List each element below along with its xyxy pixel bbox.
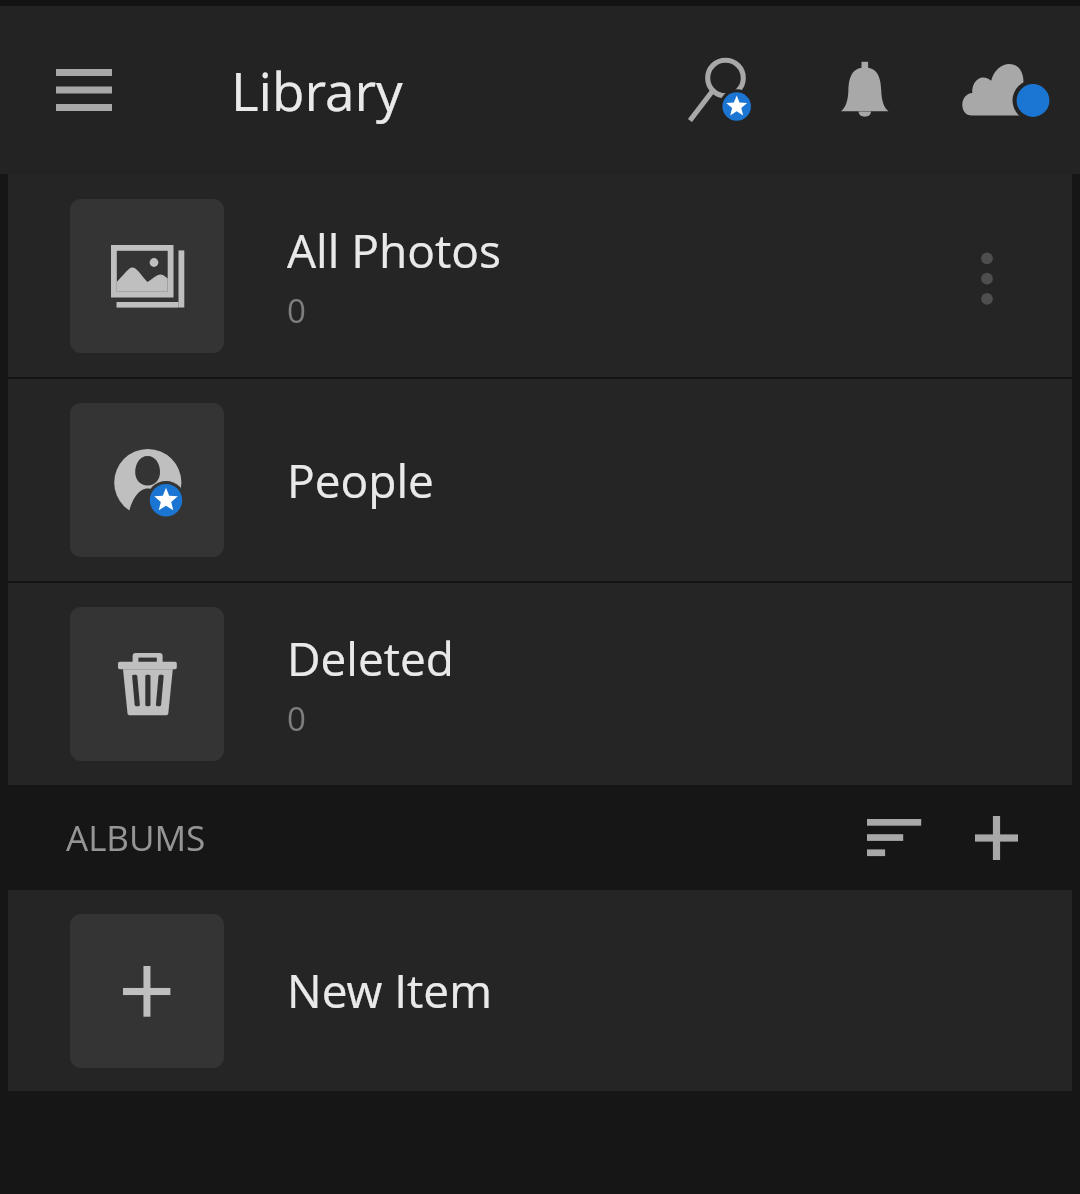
button[interactable]: All Photos [8, 174, 1072, 377]
button[interactable]: New Item [8, 890, 1072, 1091]
staticText: ALBUMS [66, 814, 206, 862]
button[interactable]: Open navigation menu [28, 52, 140, 128]
staticText: New Item [287, 959, 492, 1022]
button[interactable]: Add album [940, 785, 1052, 890]
button[interactable]: People [8, 379, 1072, 581]
staticText: 0 [287, 288, 306, 333]
button[interactable]: Search [688, 56, 754, 122]
staticText: All Photos [287, 219, 502, 282]
staticText: People [287, 449, 434, 512]
button[interactable]: Sort albums [821, 785, 967, 890]
staticText: Library [231, 54, 403, 126]
staticText: Deleted [287, 627, 455, 690]
button[interactable]: Deleted [8, 583, 1072, 785]
button[interactable]: More options [902, 174, 1072, 377]
staticText: 0 [287, 696, 306, 741]
button[interactable]: Cloud sync status [960, 60, 1052, 120]
button[interactable]: Notifications [839, 58, 889, 120]
